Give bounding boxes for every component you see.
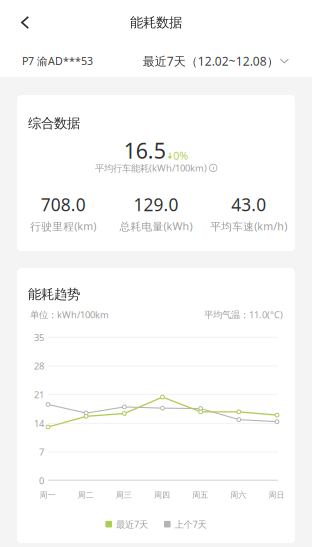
staticText: 最近7天（12.02~12.08） xyxy=(143,53,279,69)
staticText: 周一 xyxy=(39,490,55,500)
button[interactable]: 最近7天（12.02~12.08） xyxy=(143,53,289,69)
staticText: 综合数据 xyxy=(28,115,80,131)
staticText: 周六 xyxy=(230,490,246,500)
staticText: 14 xyxy=(34,417,44,429)
staticText: 0 xyxy=(39,474,44,487)
staticText: 708.0 xyxy=(41,193,86,216)
staticText: 7 xyxy=(39,446,44,458)
staticText: 129.0 xyxy=(133,193,178,216)
staticText: 能耗趋势 xyxy=(28,286,80,302)
staticText: 平均车速(km/h) xyxy=(210,219,287,233)
staticText: 能耗数据 xyxy=(130,14,182,31)
staticText: 周二 xyxy=(78,490,94,500)
staticText: 21 xyxy=(34,388,44,401)
staticText: 行驶里程(km) xyxy=(30,219,96,233)
staticText: 周三 xyxy=(116,490,132,500)
staticText: 周四 xyxy=(154,490,170,500)
button[interactable]: Back xyxy=(0,5,43,40)
staticText: 16.5 xyxy=(124,136,166,165)
staticText: 单位：kWh/100km xyxy=(30,308,109,321)
staticText: 总耗电量(kWh) xyxy=(119,219,192,233)
staticText: 最近7天 xyxy=(116,518,148,530)
staticText: 平均气温：11.0(°C) xyxy=(204,308,283,321)
staticText: 上个7天 xyxy=(175,518,207,530)
staticText: 周日 xyxy=(268,490,284,500)
staticText: 43.0 xyxy=(231,193,266,216)
staticText: P7 渝AD***53 xyxy=(22,54,93,68)
staticText: 35 xyxy=(34,331,44,343)
staticText: 0% xyxy=(173,148,188,163)
staticText: 周五 xyxy=(192,490,208,500)
staticText: 平均行车能耗(kWh/100km) xyxy=(95,162,207,174)
staticText: 28 xyxy=(34,360,44,372)
